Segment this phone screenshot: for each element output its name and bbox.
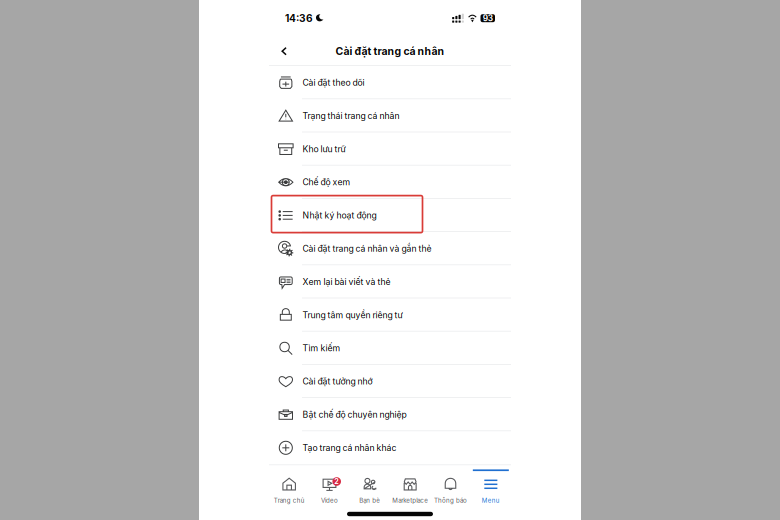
button[interactable]: Trạng thái trang cá nhân [269,99,511,132]
staticText: Cài đặt theo dõi [302,77,364,88]
staticText: Nhật ký hoạt động [302,210,376,221]
button[interactable]: Cài đặt tưởng nhớ [269,365,511,398]
button[interactable]: Menu [471,465,511,520]
button[interactable]: Cài đặt trang cá nhân và gắn thẻ [269,232,511,265]
button[interactable]: Tạo trang cá nhân khác [269,431,511,464]
button[interactable]: Bạn bè [350,465,390,520]
staticText: Tìm kiếm [302,343,340,353]
staticText: Trang chủ [274,497,305,504]
staticText: Trung tâm quyền riêng tư [302,310,402,320]
button[interactable]: Thông báo [430,465,471,520]
button[interactable]: Trung tâm quyền riêng tư [269,298,511,332]
staticText: Xem lại bài viết và thẻ [302,277,390,287]
button[interactable]: Marketplace [390,465,430,520]
staticText: Chế độ xem [302,177,350,187]
button[interactable]: Trang chủ [269,465,309,520]
button[interactable]: Chế độ xem [269,166,511,199]
staticText: Kho lưu trữ [302,144,345,154]
staticText: Trạng thái trang cá nhân [302,111,399,121]
button[interactable]: Cài đặt theo dõi [269,66,511,99]
staticText: Bật chế độ chuyên nghiệp [302,409,406,420]
staticText: Marketplace [392,497,428,504]
staticText: Tạo trang cá nhân khác [302,443,396,453]
button[interactable]: Xem lại bài viết và thẻ [269,265,511,298]
button[interactable]: 2 [309,465,350,520]
button[interactable]: Back [269,37,297,65]
button[interactable]: Tìm kiếm [269,332,511,365]
button[interactable]: Kho lưu trữ [269,132,511,166]
staticText: Cài đặt trang cá nhân [335,45,444,58]
button[interactable]: Bật chế độ chuyên nghiệp [269,398,511,431]
staticText: Bạn bè [359,497,380,504]
staticText: 14:36 [285,12,313,24]
staticText: Thông báo [434,497,467,504]
staticText: 93 [483,13,493,23]
staticText: 2 [334,477,339,486]
staticText: Cài đặt tưởng nhớ [302,376,372,387]
button[interactable]: Nhật ký hoạt động [269,199,511,232]
staticText: Video [321,497,338,504]
staticText: Cài đặt trang cá nhân và gắn thẻ [302,243,431,254]
staticText: Menu [482,497,500,504]
